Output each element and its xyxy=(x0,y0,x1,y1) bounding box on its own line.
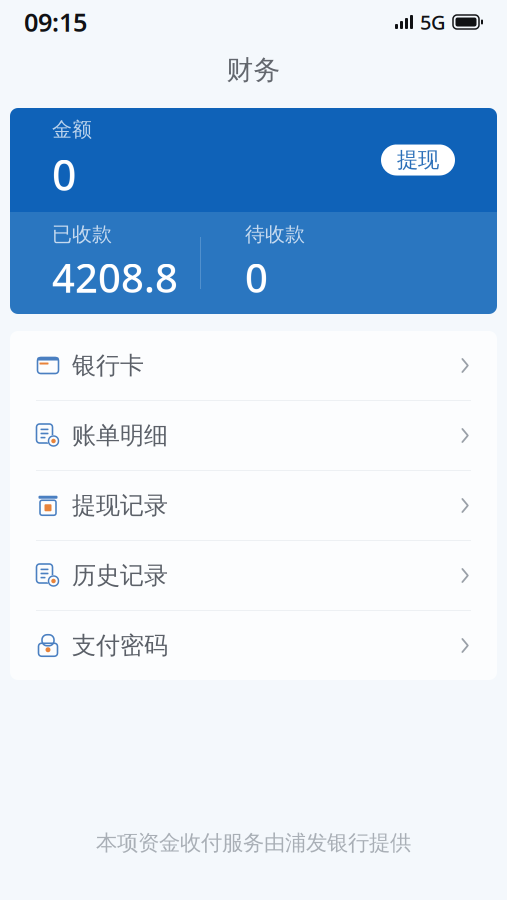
staticText: 待收款 xyxy=(245,222,305,247)
staticText: 0 xyxy=(245,251,268,304)
button[interactable]: 提现记录 xyxy=(10,471,497,541)
button[interactable]: 银行卡 xyxy=(10,331,497,401)
button[interactable]: 支付密码 xyxy=(10,611,497,680)
staticText: 金额 xyxy=(52,117,92,142)
staticText: 5G xyxy=(420,9,446,35)
staticText: 提现记录 xyxy=(72,491,168,520)
staticText: 银行卡 xyxy=(72,351,144,380)
staticText: 09:15 xyxy=(24,5,87,39)
staticText: 历史记录 xyxy=(72,561,168,590)
staticText: 财务 xyxy=(226,54,280,86)
staticText: 支付密码 xyxy=(72,631,168,660)
button[interactable]: 提现 xyxy=(381,144,455,175)
staticText: 已收款 xyxy=(52,222,112,247)
button[interactable]: 账单明细 xyxy=(10,401,497,471)
button[interactable]: 历史记录 xyxy=(10,541,497,611)
staticText: 0 xyxy=(52,146,76,203)
staticText: 4208.8 xyxy=(52,251,178,304)
staticText: 提现 xyxy=(397,147,439,173)
staticText: 本项资金收付服务由浦发银行提供 xyxy=(96,830,411,856)
staticText: 账单明细 xyxy=(72,421,168,450)
